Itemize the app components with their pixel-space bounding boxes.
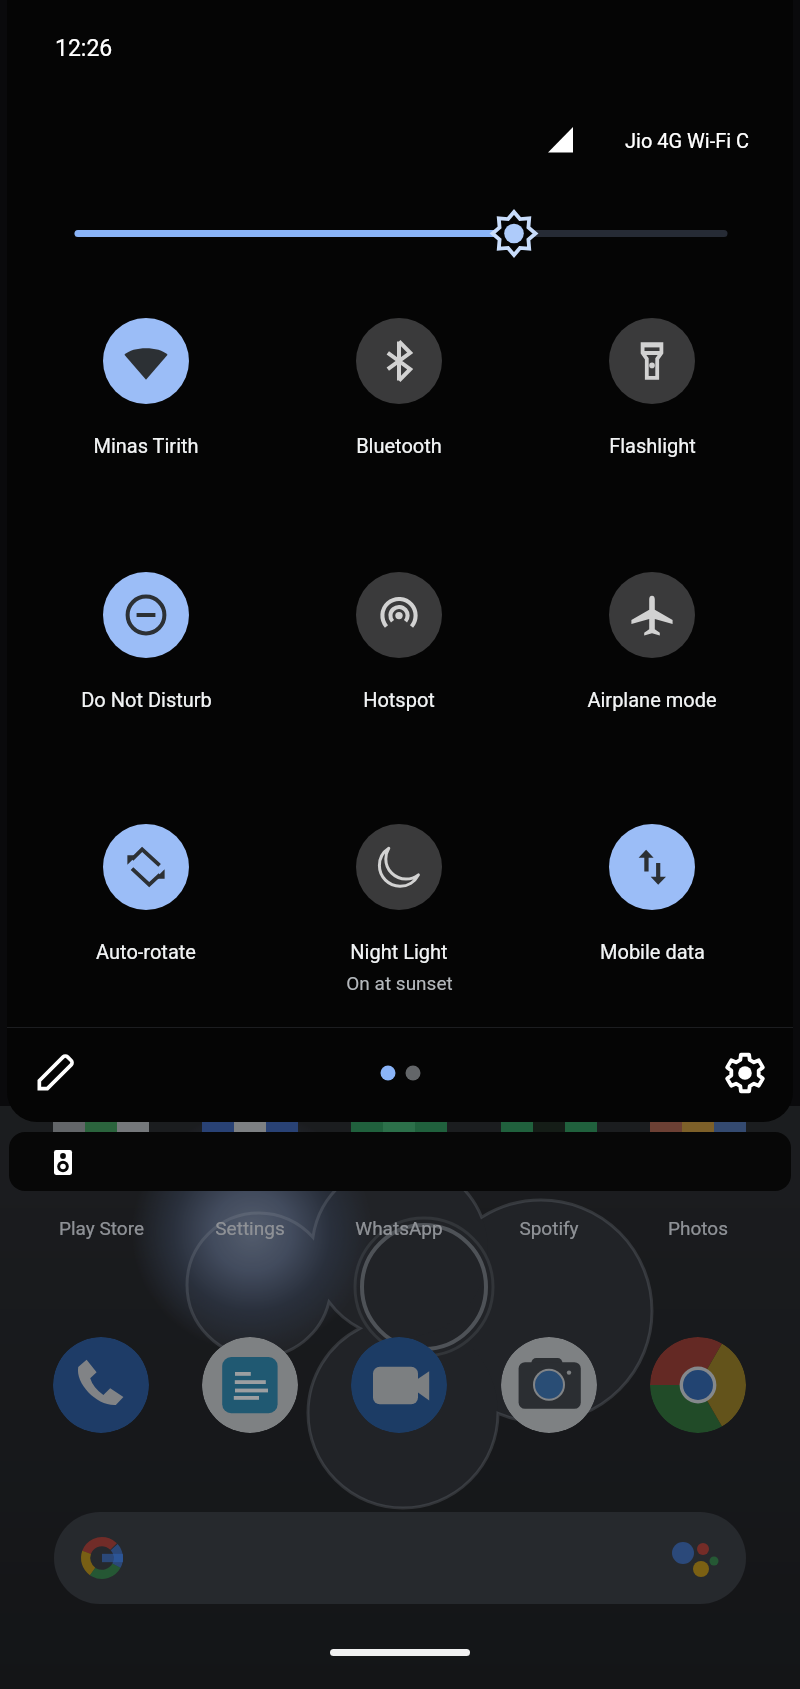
button[interactable]: Clock [55,35,113,62]
button[interactable]: Auto-rotate [20,824,272,963]
button[interactable]: Phone [53,1337,149,1433]
staticText: Flashlight [609,434,696,457]
button[interactable]: Chrome [650,1337,746,1433]
button[interactable]: Do Not Disturb [20,572,272,711]
button[interactable]: Flashlight [526,318,778,457]
staticText: Photos [668,1217,728,1239]
button[interactable]: Night Light [273,824,525,994]
staticText: Jio 4G Wi-Fi C [625,129,750,152]
button[interactable]: Minas Tirith [20,318,272,457]
staticText: 12:26 [55,35,113,62]
button[interactable]: Edit tiles [22,1040,88,1106]
button[interactable]: Brightness [40,198,760,270]
staticText: On at sunset [346,972,453,994]
button[interactable]: Hotspot [273,572,525,711]
button[interactable]: Meet [351,1337,447,1433]
button[interactable]: Mobile data [526,824,778,963]
staticText: Play Store [59,1217,144,1239]
staticText: Settings [215,1217,285,1239]
staticText: Do Not Disturb [81,688,212,711]
staticText: Minas Tirith [93,434,199,457]
button[interactable]: Camera [501,1337,597,1433]
button[interactable]: Messages [202,1337,298,1433]
staticText: Bluetooth [356,434,442,457]
button[interactable]: Airplane mode [526,572,778,711]
button[interactable]: Media output [9,1132,791,1191]
staticText: Hotspot [363,688,435,711]
staticText: Auto-rotate [96,940,196,963]
staticText: Airplane mode [587,688,717,711]
staticText: Spotify [519,1217,579,1239]
button[interactable]: Bluetooth [273,318,525,457]
button[interactable]: Search [54,1512,746,1604]
staticText: Night Light [350,940,448,963]
staticText: WhatsApp [355,1217,443,1239]
staticText: Mobile data [600,940,705,963]
button[interactable]: Settings [711,1039,779,1107]
